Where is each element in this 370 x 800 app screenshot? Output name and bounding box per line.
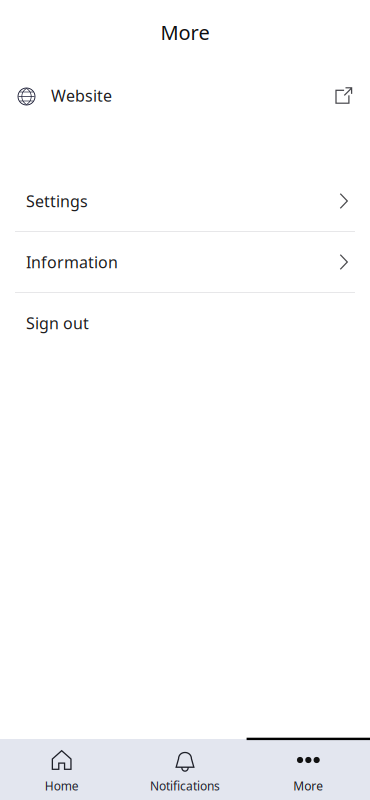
button[interactable]: Settings <box>0 171 370 231</box>
staticText: Website <box>51 85 112 106</box>
button[interactable]: More <box>247 739 370 800</box>
staticText: Settings <box>26 190 88 212</box>
staticText: More <box>160 19 209 46</box>
staticText: Home <box>45 778 79 794</box>
button[interactable]: Sign out <box>0 293 370 353</box>
button[interactable]: Information <box>0 232 370 292</box>
staticText: Information <box>26 251 118 273</box>
staticText: Notifications <box>150 778 220 794</box>
button[interactable]: Website <box>0 74 370 117</box>
button[interactable]: Home <box>0 739 123 800</box>
staticText: Sign out <box>26 312 89 334</box>
staticText: More <box>293 778 323 794</box>
button[interactable]: Notifications <box>123 739 247 800</box>
